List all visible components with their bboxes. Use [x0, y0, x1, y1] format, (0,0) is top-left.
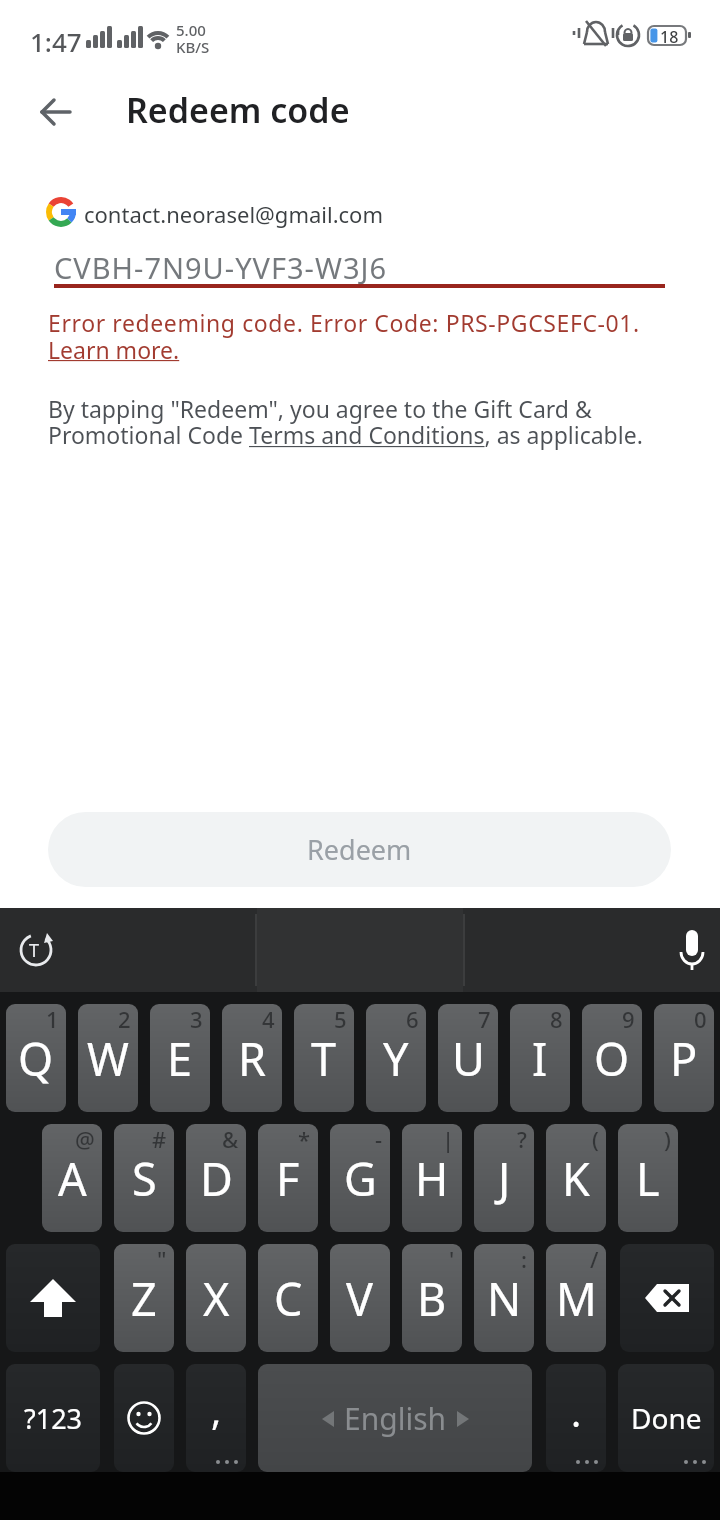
staticText: KB/S — [176, 37, 210, 57]
button[interactable]: , — [186, 1364, 246, 1472]
button[interactable]: * — [258, 1124, 318, 1232]
staticText: U — [452, 1028, 485, 1089]
button[interactable]: / — [546, 1244, 606, 1352]
staticText: Done — [631, 1399, 702, 1437]
button[interactable]: V — [330, 1244, 390, 1352]
staticText: 5 — [334, 1004, 347, 1034]
button[interactable]: 6 — [366, 1004, 426, 1112]
staticText: T — [29, 938, 40, 963]
button[interactable]: ? — [474, 1124, 534, 1232]
button[interactable]: 9 — [582, 1004, 642, 1112]
staticText: Learn more. — [48, 334, 180, 365]
staticText: N — [487, 1268, 522, 1329]
staticText: " — [157, 1244, 167, 1274]
button[interactable]: @ — [42, 1124, 102, 1232]
staticText: I — [532, 1028, 548, 1089]
button[interactable] — [6, 1244, 100, 1352]
button[interactable]: Done — [618, 1364, 714, 1472]
button[interactable] — [17, 931, 55, 969]
button[interactable] — [620, 1244, 714, 1352]
button[interactable]: 5 — [294, 1004, 354, 1112]
staticText: 5.00 — [176, 20, 206, 40]
staticText: ? — [517, 1124, 527, 1154]
button[interactable]: ( — [546, 1124, 606, 1232]
staticText: 7 — [478, 1004, 491, 1034]
staticText: C — [274, 1268, 303, 1329]
button[interactable]: - — [330, 1124, 390, 1232]
button[interactable]: | — [402, 1124, 462, 1232]
button[interactable]: Redeem — [48, 812, 671, 887]
button[interactable] — [114, 1364, 174, 1472]
staticText: F — [276, 1148, 300, 1209]
button[interactable]: Learn more. — [0, 0, 132, 31]
button[interactable]: ' — [402, 1244, 462, 1352]
staticText: - — [375, 1124, 383, 1154]
button[interactable]: 0 — [654, 1004, 714, 1112]
button[interactable]: : — [474, 1244, 534, 1352]
staticText: ( — [592, 1124, 599, 1154]
staticText: L — [636, 1148, 660, 1209]
button[interactable]: # — [114, 1124, 174, 1232]
staticText: W — [87, 1028, 129, 1089]
staticText: D — [200, 1148, 233, 1209]
button[interactable]: X — [186, 1244, 246, 1352]
button[interactable] — [36, 92, 76, 132]
button[interactable]: ?123 — [6, 1364, 100, 1472]
staticText: P — [670, 1028, 698, 1089]
staticText: M — [556, 1268, 597, 1329]
staticText: O — [594, 1028, 630, 1089]
button[interactable]: & — [186, 1124, 246, 1232]
staticText: & — [222, 1124, 239, 1154]
staticText: G — [344, 1148, 377, 1209]
button[interactable]: 7 — [438, 1004, 498, 1112]
button[interactable]: 3 — [150, 1004, 210, 1112]
staticText: R — [238, 1028, 266, 1089]
button[interactable]: 2 — [78, 1004, 138, 1112]
staticText: 1 — [46, 1004, 59, 1034]
button[interactable]: ) — [618, 1124, 678, 1232]
staticText: . — [571, 1386, 582, 1438]
staticText: By tapping "Redeem", you agree to the Gi… — [48, 393, 643, 451]
button[interactable]: " — [114, 1244, 174, 1352]
staticText: 3 — [190, 1004, 203, 1034]
staticText: Error redeeming code. Error Code: PRS-PG… — [48, 307, 640, 338]
staticText: Y — [383, 1028, 409, 1089]
button[interactable]: C — [258, 1244, 318, 1352]
button[interactable]: English — [258, 1364, 532, 1472]
staticText: / — [590, 1244, 599, 1274]
staticText: 6 — [406, 1004, 419, 1034]
staticText: contact.neorasel@gmail.com — [84, 199, 383, 229]
staticText: Q — [18, 1028, 54, 1089]
staticText: ' — [449, 1244, 455, 1274]
staticText: # — [152, 1124, 167, 1154]
staticText: ) — [664, 1124, 671, 1154]
button[interactable]: 1 — [6, 1004, 66, 1112]
staticText: A — [58, 1148, 87, 1209]
button[interactable] — [676, 930, 708, 962]
staticText: Z — [131, 1268, 157, 1329]
staticText: T — [311, 1028, 337, 1089]
staticText: H — [415, 1148, 449, 1209]
staticText: English — [344, 1398, 447, 1439]
staticText: B — [417, 1268, 447, 1329]
staticText: ?123 — [24, 1400, 83, 1437]
staticText: 8 — [550, 1004, 563, 1034]
staticText: 2 — [118, 1004, 131, 1034]
staticText: 9 — [622, 1004, 635, 1034]
staticText: X — [203, 1268, 230, 1329]
button[interactable]: . — [546, 1364, 606, 1472]
staticText: K — [562, 1148, 590, 1209]
button[interactable]: 4 — [222, 1004, 282, 1112]
staticText: 0 — [694, 1004, 707, 1034]
staticText: 4 — [262, 1004, 275, 1034]
staticText: V — [346, 1268, 374, 1329]
staticText: * — [298, 1124, 311, 1154]
staticText: Redeem — [307, 831, 412, 868]
staticText: , — [211, 1384, 222, 1436]
staticText: J — [498, 1148, 511, 1209]
staticText: @ — [75, 1124, 95, 1154]
staticText: Redeem code — [126, 87, 350, 133]
staticText: : — [521, 1244, 527, 1274]
button[interactable]: 8 — [510, 1004, 570, 1112]
staticText: S — [132, 1148, 157, 1209]
